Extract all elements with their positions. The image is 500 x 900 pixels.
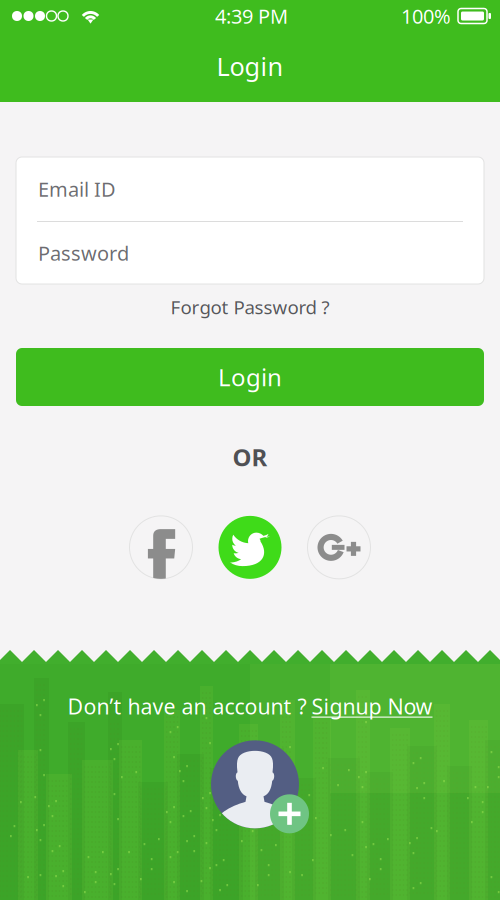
button[interactable]: Forgot Password ? [154, 284, 345, 330]
staticText: Signup Now [311, 692, 432, 720]
button[interactable]: Signup Now [311, 692, 432, 720]
staticText: 4:39 PM [215, 3, 288, 29]
button[interactable]: Login [16, 348, 484, 406]
staticText: Login [216, 49, 283, 83]
staticText: Login [218, 361, 282, 393]
button[interactable]: Sign in with Facebook [129, 516, 192, 579]
button[interactable]: Sign in with Google Plus [307, 516, 370, 579]
staticText: OR [232, 441, 267, 473]
staticText: Password [38, 240, 129, 266]
staticText: Email ID [38, 176, 116, 202]
staticText: Forgot Password ? [170, 295, 329, 319]
button[interactable]: Sign in with Twitter [218, 516, 281, 579]
staticText: Don’t have an account ? [67, 692, 306, 720]
staticText: 100% [401, 3, 451, 29]
